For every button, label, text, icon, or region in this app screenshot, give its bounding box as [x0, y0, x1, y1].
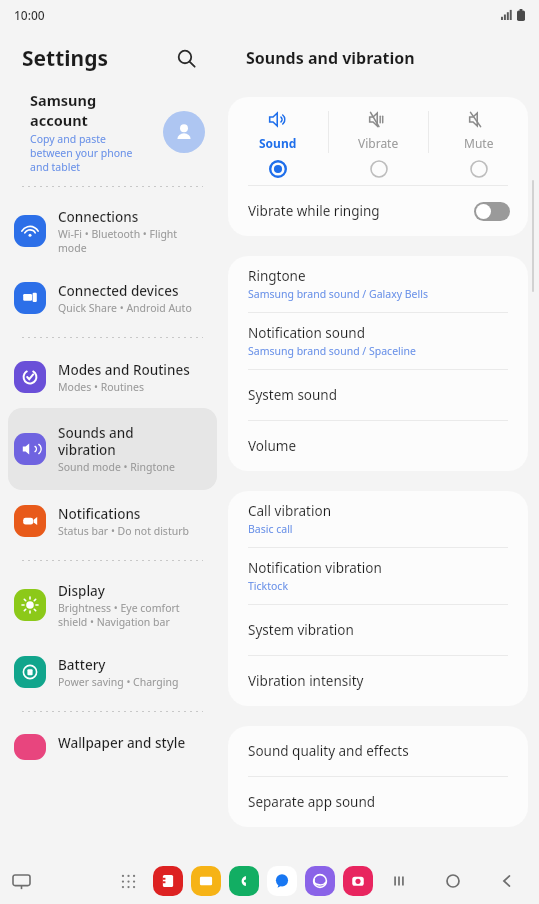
staticText: Connected devices [58, 282, 179, 300]
button[interactable]: App 2 [229, 866, 259, 896]
button[interactable]: Notifications [8, 490, 217, 552]
button[interactable]: Volume [228, 421, 528, 471]
button[interactable]: Display [8, 569, 217, 641]
button[interactable]: Mute [429, 97, 528, 185]
staticText: Vibrate while ringing [248, 202, 474, 220]
staticText: Quick Share • Android Auto [58, 301, 192, 315]
staticText: Mute [464, 135, 494, 151]
button[interactable]: Recents [385, 867, 413, 895]
staticText: 10:00 [14, 7, 45, 23]
button[interactable]: Call vibration [228, 491, 528, 547]
staticText: Samsung brand sound / Galaxy Bells [248, 287, 428, 301]
staticText: Call vibration [248, 502, 331, 520]
button[interactable]: Vibration intensity [228, 656, 528, 706]
button[interactable]: App 1 [191, 866, 221, 896]
staticText: Samsung brand sound / Spaceline [248, 344, 416, 358]
staticText: account [30, 110, 88, 130]
staticText: Wi-Fi • Bluetooth • Flight mode [58, 227, 178, 255]
button[interactable]: App 3 [267, 866, 297, 896]
staticText: Vibrate [358, 135, 399, 151]
button[interactable]: App 0 [153, 866, 183, 896]
button[interactable]: Sounds and vibration [8, 408, 217, 490]
staticText: Sound quality and effects [248, 742, 409, 760]
staticText: System sound [248, 386, 338, 404]
button[interactable]: Wallpaper and style [0, 720, 225, 760]
staticText: Samsung [30, 90, 97, 110]
button[interactable]: Samsung [0, 86, 225, 178]
button[interactable]: Vibrate while ringing [228, 186, 528, 236]
staticText: System vibration [248, 621, 354, 639]
staticText: Display [58, 582, 105, 600]
button[interactable]: Sound quality and effects [228, 726, 528, 776]
staticText: Ringtone [248, 267, 306, 285]
button[interactable]: Modes and Routines [8, 346, 217, 408]
button[interactable]: Notification vibration [228, 548, 528, 604]
staticText: Wallpaper and style [58, 734, 186, 752]
staticText: Brightness • Eye comfort shield • Naviga… [58, 601, 180, 629]
staticText: Sounds and vibration [58, 424, 134, 459]
button[interactable]: Connections [8, 195, 217, 267]
button[interactable]: App 5 [343, 866, 373, 896]
staticText: Vibration intensity [248, 672, 364, 690]
staticText: Notifications [58, 505, 141, 523]
staticText: Connections [58, 208, 139, 226]
button[interactable]: Recent task [4, 864, 38, 898]
staticText: Sound [259, 135, 297, 151]
staticText: Ticktock [248, 579, 288, 593]
button[interactable]: Search [169, 41, 203, 75]
staticText: Modes • Routines [58, 380, 145, 394]
staticText: Battery [58, 656, 106, 674]
button[interactable]: Notification sound [228, 313, 528, 369]
staticText: Basic call [248, 522, 293, 536]
button[interactable]: Back [493, 867, 521, 895]
staticText: Settings [22, 44, 109, 73]
button[interactable]: Apps [113, 866, 143, 896]
staticText: Modes and Routines [58, 361, 190, 379]
staticText: Sound mode • Ringtone [58, 460, 175, 474]
staticText: Notification vibration [248, 559, 382, 577]
staticText: Status bar • Do not disturb [58, 524, 189, 538]
staticText: Volume [248, 437, 297, 455]
button[interactable]: Separate app sound [228, 777, 528, 827]
button[interactable]: Vibrate [329, 97, 428, 185]
button[interactable]: Battery [8, 641, 217, 703]
staticText: Sounds and vibration [246, 47, 415, 69]
staticText: Notification sound [248, 324, 365, 342]
button[interactable]: App 4 [305, 866, 335, 896]
button[interactable]: System vibration [228, 605, 528, 655]
button[interactable]: Ringtone [228, 256, 528, 312]
button[interactable]: System sound [228, 370, 528, 420]
staticText: Copy and paste between your phone and ta… [30, 132, 133, 174]
button[interactable]: Connected devices [8, 267, 217, 329]
staticText: Power saving • Charging [58, 675, 179, 689]
button[interactable]: Home [439, 867, 467, 895]
staticText: Separate app sound [248, 793, 376, 811]
button[interactable]: Sound [228, 97, 328, 185]
